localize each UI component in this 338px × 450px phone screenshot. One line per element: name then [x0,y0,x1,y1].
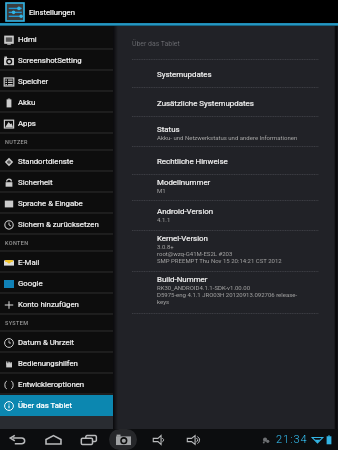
staticText: Sichern & zurücksetzen [18,220,99,229]
staticText: Systemupdates [157,70,212,79]
button[interactable]: Systemupdates [132,60,319,87]
button[interactable]: E-Mail [0,252,113,273]
staticText: KONTEN [5,240,29,246]
button[interactable]: Sichern & zurücksetzen [0,214,113,235]
button[interactable]: Status [132,117,319,146]
button[interactable]: Sicherheit [0,172,113,193]
button[interactable]: Rechtliche Hinweise [132,147,319,174]
button[interactable]: Sprache & Eingabe [0,193,113,214]
button[interactable]: Kernel-Version [132,231,319,271]
button[interactable]: Entwickleroptionen [0,374,113,395]
staticText: Akku [18,98,36,107]
staticText: Bedienungshilfen [18,359,78,368]
button[interactable]: Volume down [148,429,170,450]
staticText: Zusätzliche Systemupdates [157,99,254,108]
button[interactable]: Home [42,429,64,450]
staticText: Speicher [18,77,49,86]
button[interactable]: Hdmi [0,29,113,50]
button[interactable]: Akku [0,92,113,113]
staticText: Konto hinzufügen [18,300,79,309]
staticText: keys [157,298,170,305]
staticText: Modellnummer [157,178,211,187]
button[interactable]: Android-Version [132,201,319,230]
button[interactable]: Modellnummer [132,175,319,200]
button[interactable]: Über das Tablet [0,395,113,416]
button[interactable]: Bedienungshilfen [0,353,113,374]
button[interactable]: ScreenshotSetting [0,50,113,71]
button[interactable]: Volume up [183,429,205,450]
staticText: ScreenshotSetting [18,56,82,65]
staticText: 3.0.8+ [157,243,174,250]
button[interactable]: Status [262,433,332,446]
button[interactable]: Apps [0,113,113,134]
staticText: M1 [157,187,166,194]
button[interactable]: Google [0,273,113,294]
staticText: Einstellungen [29,8,75,17]
staticText: 4.1.1 [157,216,171,223]
button[interactable]: Build-Nummer [132,272,319,313]
staticText: Standortdienste [18,157,74,166]
staticText: Apps [18,119,36,128]
button[interactable]: Back [7,429,29,450]
staticText: Hdmi [18,35,37,44]
staticText: SMP PREEMPT Thu Nov 15 20:14:21 CST 2012 [157,257,282,264]
staticText: NUTZER [5,139,28,145]
staticText: Sicherheit [18,178,53,187]
staticText: Über das Tablet [18,401,73,410]
button[interactable]: Speicher [0,71,113,92]
staticText: root@wzq-G41M-ES2L #203 [157,250,233,257]
staticText: Akku- und Netzwerkstatus und andere Info… [157,134,298,141]
staticText: Über das Tablet [132,40,180,48]
button[interactable]: Recent apps [78,429,100,450]
staticText: E-Mail [18,258,40,267]
button[interactable]: Standortdienste [0,151,113,172]
button[interactable]: Datum & Uhrzeit [0,332,113,353]
staticText: Status [157,125,180,134]
staticText: Entwickleroptionen [18,380,85,389]
button[interactable]: Konto hinzufügen [0,294,113,315]
staticText: Sprache & Eingabe [18,199,83,208]
staticText: SYSTEM [5,320,29,326]
staticText: Rechtliche Hinweise [157,157,228,166]
staticText: Android-Version [157,207,214,216]
button[interactable]: Zusätzliche Systemupdates [132,88,319,116]
button[interactable]: Screenshot [109,429,137,450]
staticText: Build-Nummer [157,275,208,284]
staticText: Kernel-Version [157,234,208,243]
staticText: RK30_ANDROID4.1.1-SDK-v1.00.00 [157,284,251,291]
staticText: Google [18,279,43,288]
staticText: 21:34 [276,433,308,446]
staticText: D5975-eng 4.1.1 JRO03H 20120913.092706 r… [157,291,298,298]
staticText: Datum & Uhrzeit [18,338,75,347]
